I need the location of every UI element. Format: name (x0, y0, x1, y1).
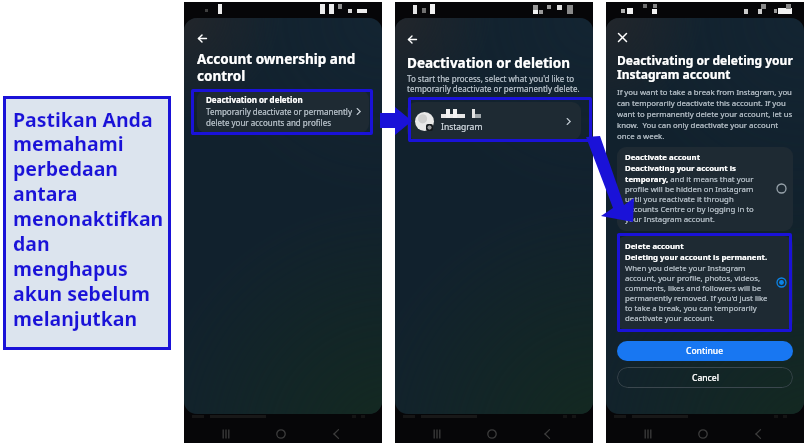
staticText: Deactivate account (625, 152, 701, 163)
button[interactable]: Deactivation or deletion (197, 90, 369, 133)
button[interactable]: Continue (617, 341, 793, 361)
button[interactable]: Home (276, 429, 286, 439)
button[interactable]: Cancel (617, 367, 793, 388)
staticText: If you want to take a break from Instagr… (617, 87, 793, 142)
button[interactable]: Deactivate account (617, 147, 793, 231)
button[interactable]: Instagram (407, 102, 581, 140)
button[interactable]: Back (542, 429, 552, 439)
button[interactable]: Recents (432, 429, 442, 439)
staticText: Deleting your account is permanent. When… (625, 252, 771, 323)
button[interactable]: Back (753, 429, 763, 439)
staticText: Temporarily deactivate or permanently de… (206, 106, 354, 128)
button[interactable]: Home (487, 429, 497, 439)
button[interactable]: Back (197, 33, 208, 44)
staticText: Instagram (441, 121, 483, 133)
staticText: Account ownership and control (197, 50, 369, 85)
button[interactable]: Back (407, 34, 418, 45)
button[interactable]: Back (331, 429, 341, 439)
staticText: Continue (686, 345, 724, 357)
staticText: Delete account (625, 241, 684, 252)
staticText: Deactivation or deletion (407, 54, 571, 72)
staticText: Cancel (692, 372, 719, 384)
staticText: Deactivating or deleting your Instagram … (617, 52, 793, 83)
staticText: Deactivation or deletion (206, 94, 303, 105)
button[interactable]: Home (698, 429, 708, 439)
button[interactable]: Recents (221, 429, 231, 439)
staticText: Deactivating your account is temporary, … (625, 163, 758, 224)
staticText: To start the process, select what you'd … (407, 73, 581, 95)
button[interactable]: Close (617, 32, 628, 43)
button[interactable]: Delete account (617, 236, 793, 330)
staticText: Pastikan Anda memahami perbedaan antara … (13, 106, 164, 332)
button[interactable]: Recents (643, 429, 653, 439)
